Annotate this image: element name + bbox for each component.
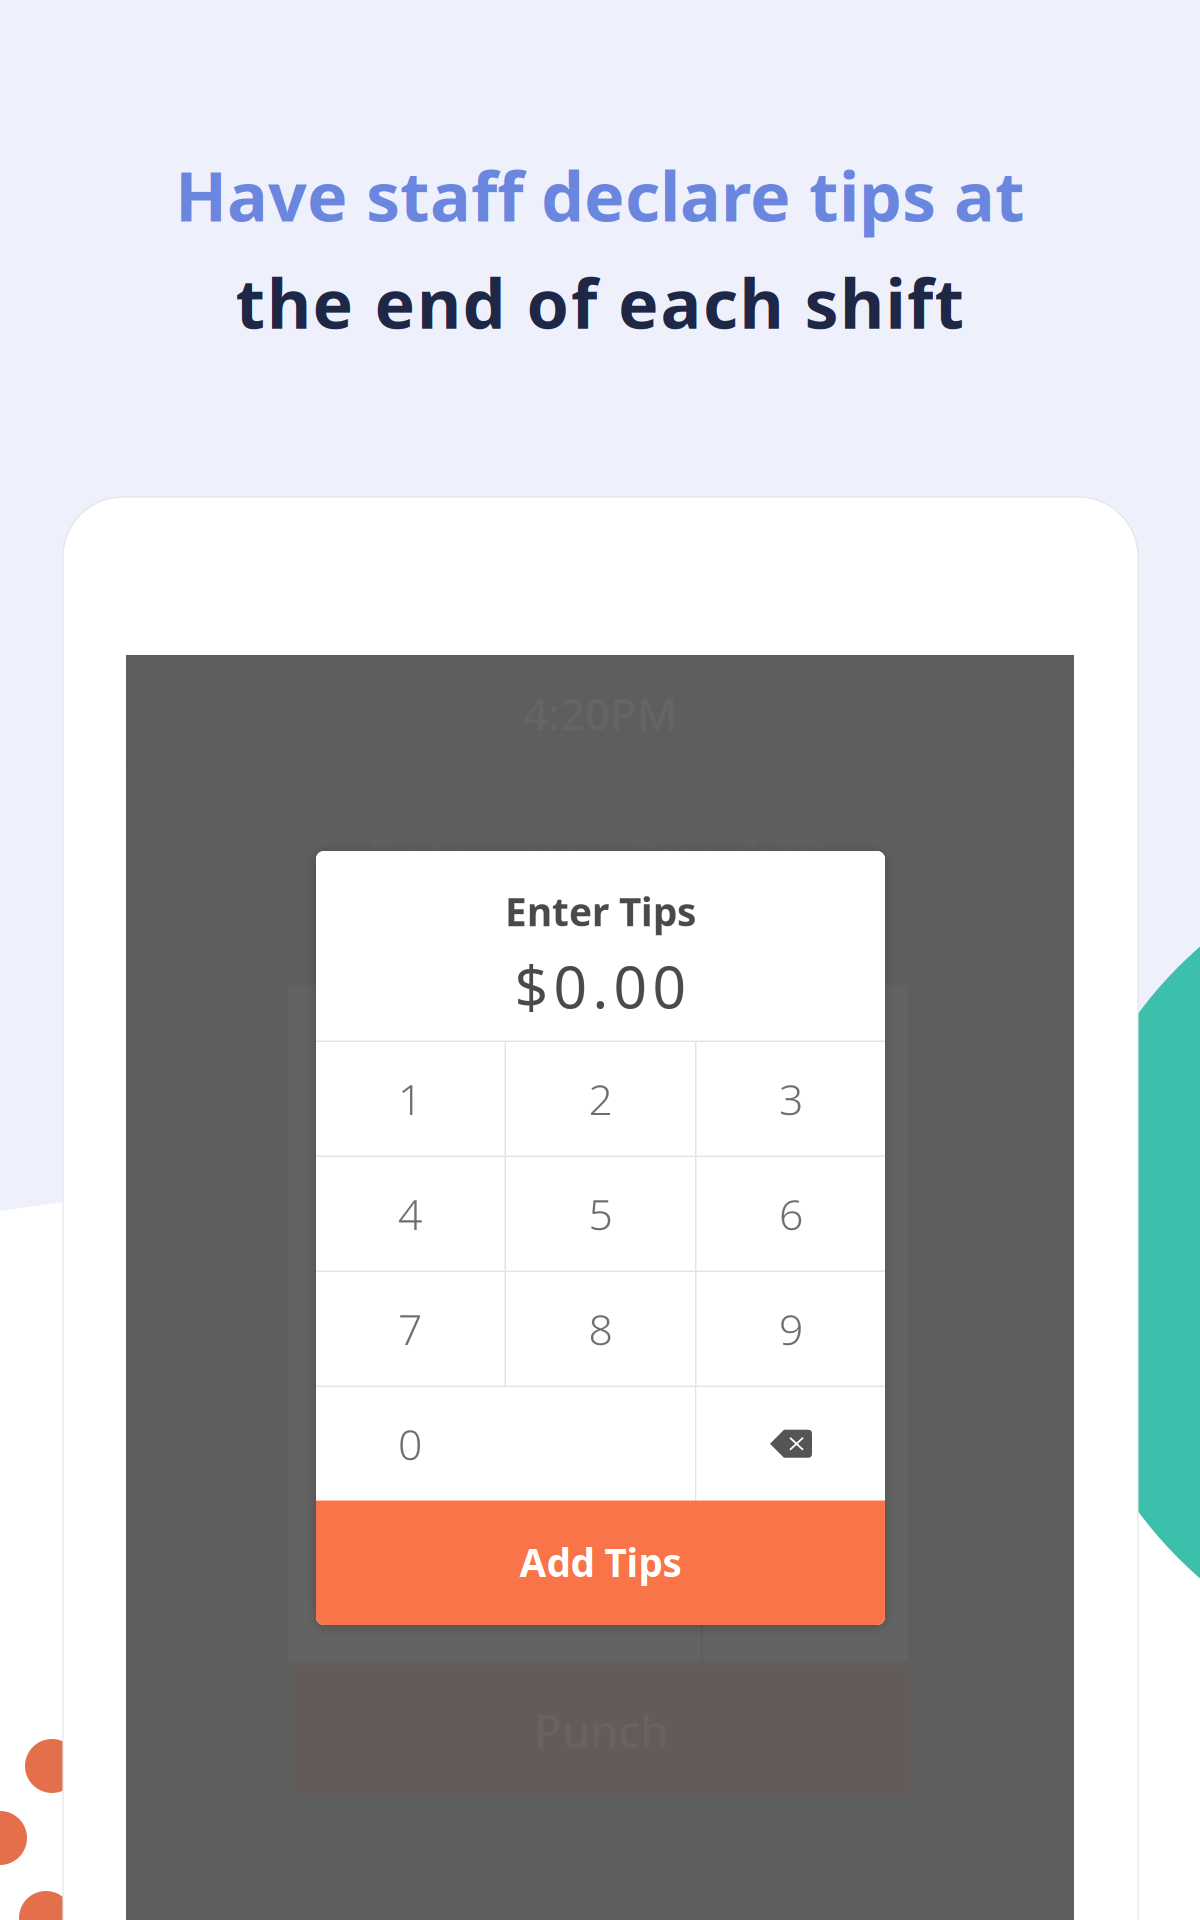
staticText: the end of each shift (235, 257, 964, 348)
staticText: 2 (588, 1070, 612, 1127)
staticText: 3 (779, 1070, 803, 1127)
staticText: $0.00 (514, 947, 686, 1025)
button[interactable]: 9 (696, 1272, 885, 1385)
staticText: 5 (588, 1185, 612, 1242)
button[interactable]: 6 (696, 1157, 885, 1270)
staticText: Add Tips (519, 1536, 681, 1588)
staticText: Enter Tips (505, 885, 696, 937)
staticText: 7 (398, 1300, 422, 1357)
button[interactable]: 4 (315, 1157, 504, 1270)
staticText: Have staff declare tips at (175, 150, 1025, 240)
button[interactable]: 1 (315, 1042, 504, 1155)
button[interactable]: 3 (696, 1042, 885, 1155)
button[interactable]: 8 (506, 1272, 695, 1385)
button[interactable]: Add Tips (316, 1499, 885, 1624)
button[interactable]: 0 (315, 1387, 504, 1500)
staticText: 0 (398, 1415, 422, 1472)
staticText: 8 (588, 1300, 612, 1357)
staticText: 1 (398, 1070, 422, 1127)
staticText: Enter your PunchID (368, 825, 832, 889)
button[interactable]: 2 (506, 1042, 695, 1155)
button[interactable]: 5 (506, 1157, 695, 1270)
button[interactable]: 7 (315, 1272, 504, 1385)
button[interactable]: Delete (696, 1387, 885, 1500)
staticText: 9 (779, 1300, 803, 1357)
staticText: 6 (779, 1185, 803, 1242)
staticText: 4 (398, 1185, 422, 1242)
